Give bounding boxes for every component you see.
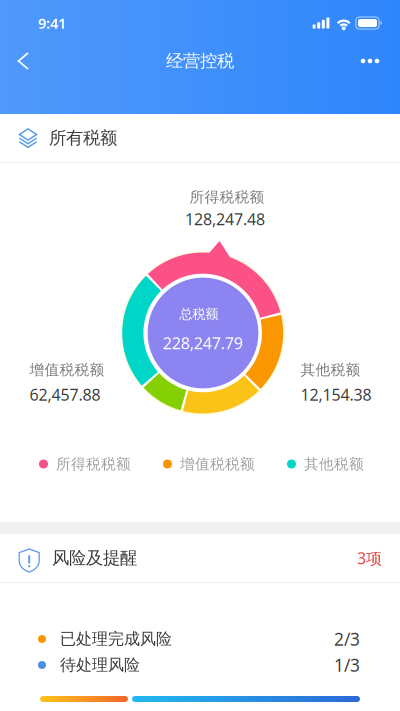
staticText: 12,154.38 (300, 384, 371, 405)
staticText: 128,247.48 (185, 208, 265, 230)
button[interactable]: 已处理完成风险 (0, 624, 400, 654)
button[interactable]: 返回 (4, 41, 43, 81)
button[interactable]: 风险及提醒 (0, 534, 400, 582)
staticText: 所得税税额 (56, 455, 131, 473)
staticText: 其他税额 (304, 455, 364, 473)
staticText: 228,247.79 (163, 332, 243, 354)
staticText: 经营控税 (166, 50, 234, 72)
staticText: 9:41 (38, 13, 66, 33)
staticText: 62,457.88 (29, 384, 100, 405)
staticText: 增值税税额 (29, 361, 104, 379)
staticText: 3项 (357, 547, 382, 569)
staticText: 1/3 (334, 653, 360, 676)
staticText: 风险及提醒 (52, 547, 137, 569)
button[interactable]: 所有税额 (0, 114, 400, 162)
staticText: 2/3 (334, 627, 360, 650)
button[interactable]: 待处理风险 (0, 650, 400, 680)
staticText: 所得税税额 (189, 188, 264, 206)
button[interactable]: 更多 (346, 42, 393, 80)
staticText: 已处理完成风险 (60, 629, 172, 649)
staticText: 所有税额 (49, 127, 117, 149)
staticText: 增值税税额 (180, 455, 255, 473)
staticText: 总税额 (179, 306, 218, 322)
staticText: 待处理风险 (60, 655, 140, 675)
staticText: 其他税额 (300, 361, 360, 379)
